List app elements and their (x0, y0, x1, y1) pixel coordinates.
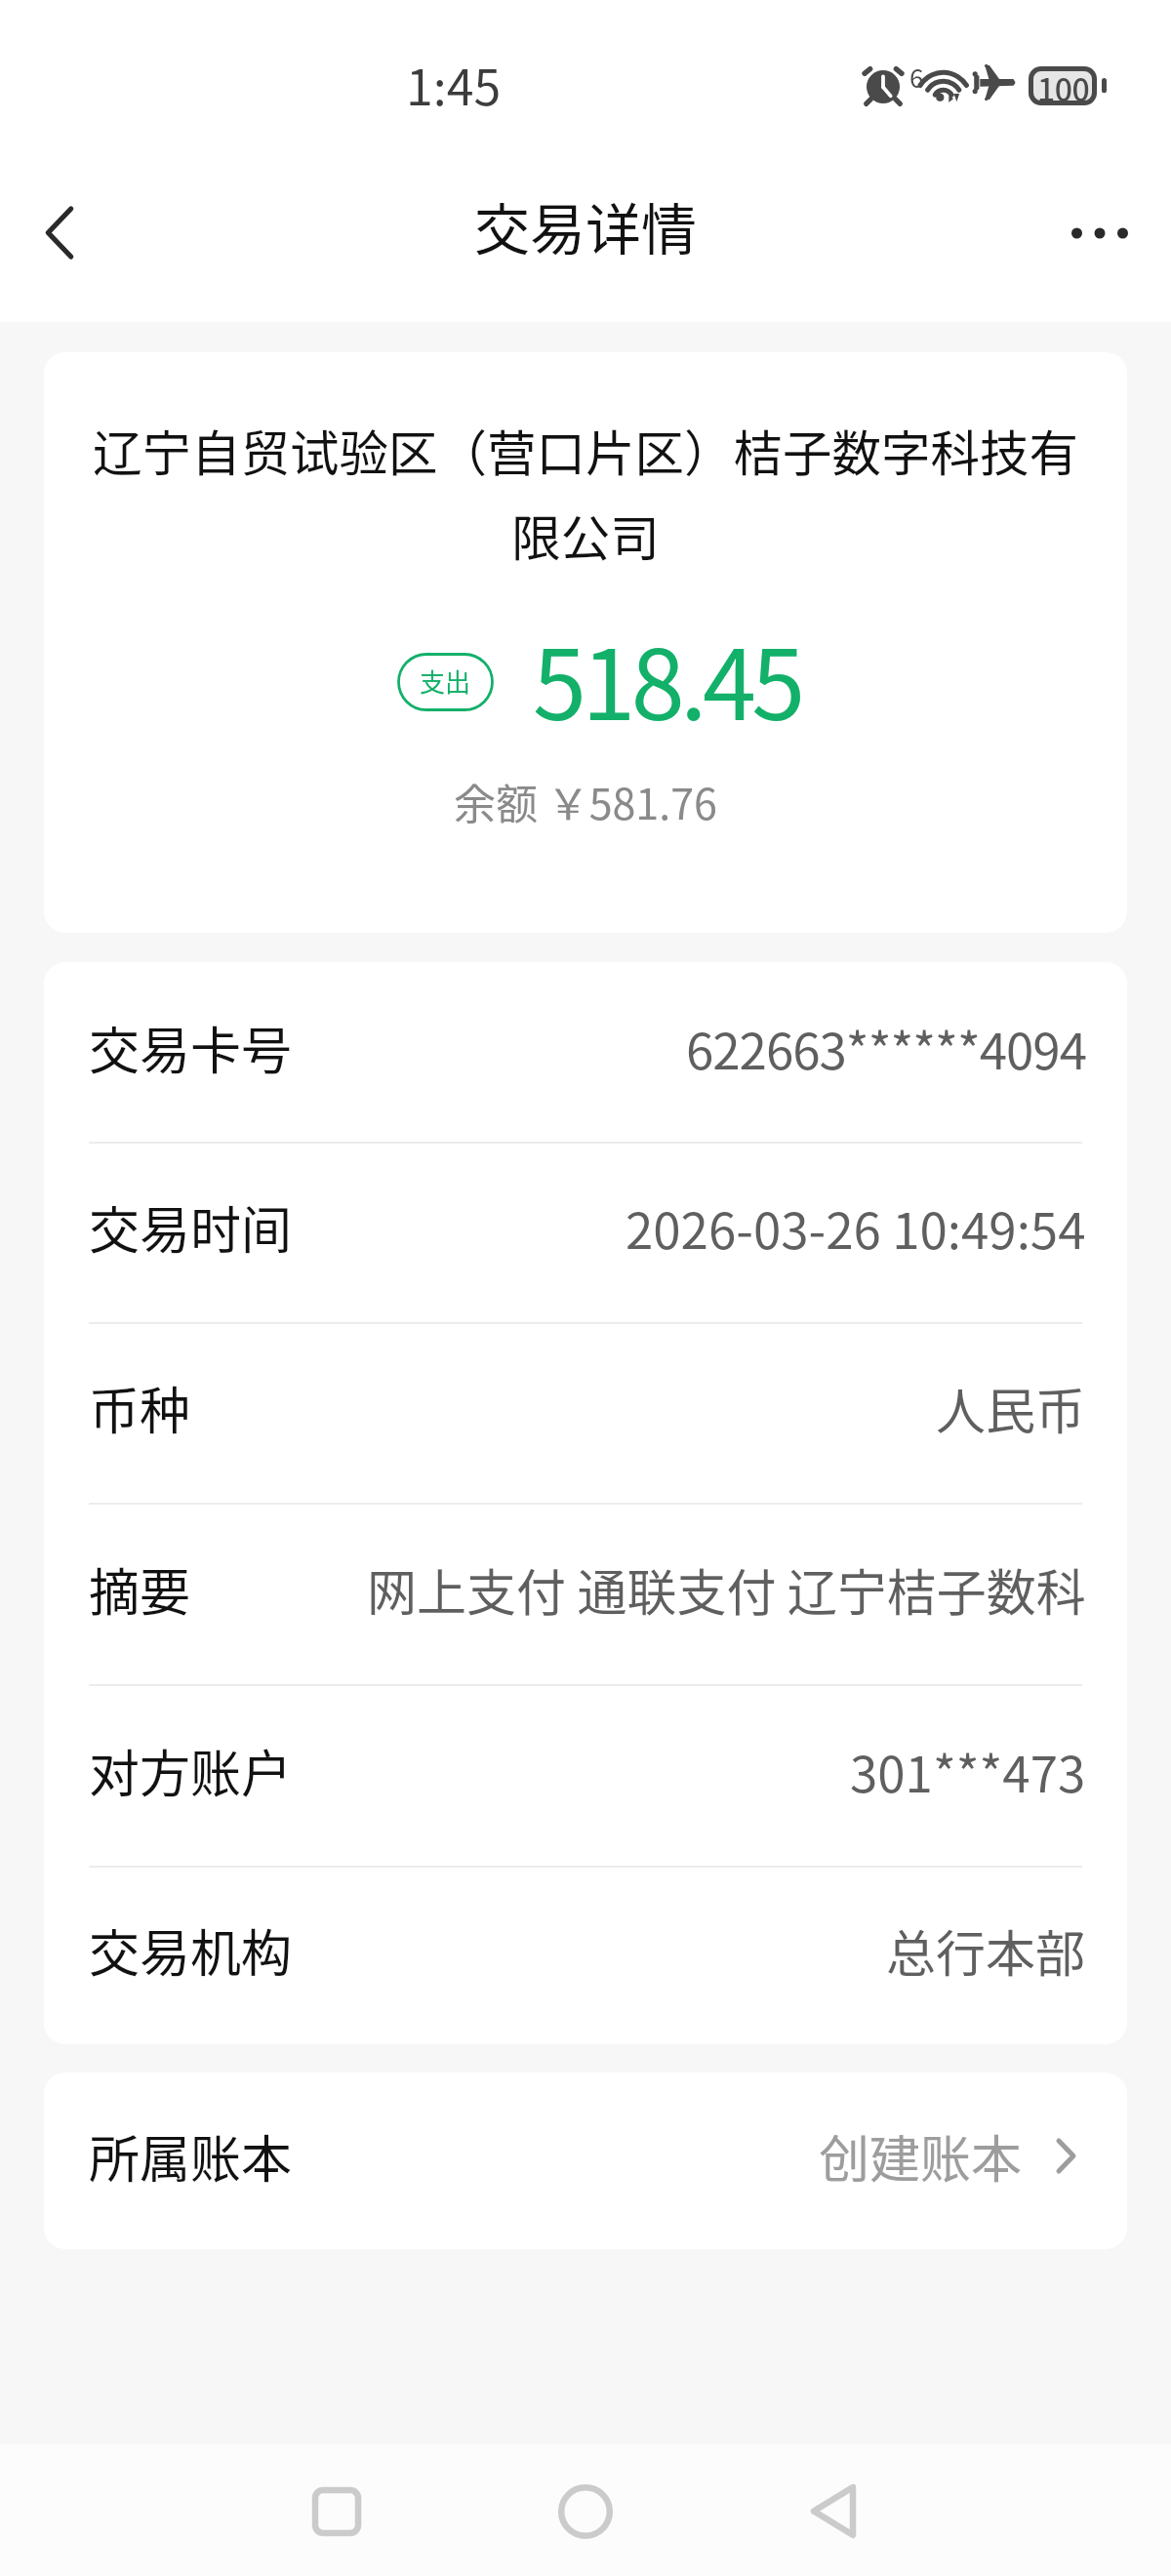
button[interactable]: 所属账本 (44, 2073, 1127, 2249)
staticText: 交易卡号 (89, 1011, 293, 1084)
staticText: 2026-03-26 10:49:54 (626, 1191, 1086, 1264)
staticText: 摘要 (89, 1552, 191, 1626)
staticText: 6 (909, 59, 924, 96)
staticText: 总行本部 (886, 1914, 1086, 1987)
staticText: 对方账户 (89, 1734, 293, 1807)
staticText: 人民币 (936, 1372, 1086, 1444)
staticText: 辽宁自贸试验区（营口片区）桔子数字科技有限公司 (88, 414, 1083, 571)
button[interactable]: Back (0, 176, 113, 302)
button[interactable]: Back (755, 2444, 911, 2576)
staticText: 518.45 (533, 608, 801, 747)
staticText: 交易机构 (89, 1913, 293, 1987)
staticText: 创建账本 (819, 2119, 1023, 2193)
staticText: 交易详情 (474, 185, 697, 266)
button[interactable]: More options (1044, 176, 1171, 302)
staticText: 100 (1037, 65, 1090, 104)
staticText: 交易时间 (89, 1190, 293, 1264)
button[interactable]: Home (507, 2444, 664, 2576)
staticText: 所属账本 (89, 2119, 293, 2193)
staticText: 1:45 (406, 49, 502, 119)
staticText: 币种 (89, 1371, 191, 1444)
staticText: 支出 (420, 663, 471, 700)
staticText: 301***473 (850, 1735, 1086, 1807)
staticText: 622663******4094 (686, 1012, 1086, 1084)
staticText: 网上支付 通联支付 辽宁桔子数科 (367, 1553, 1086, 1626)
button[interactable]: Recent apps (259, 2444, 415, 2576)
staticText: 余额 ￥581.76 (454, 771, 717, 831)
